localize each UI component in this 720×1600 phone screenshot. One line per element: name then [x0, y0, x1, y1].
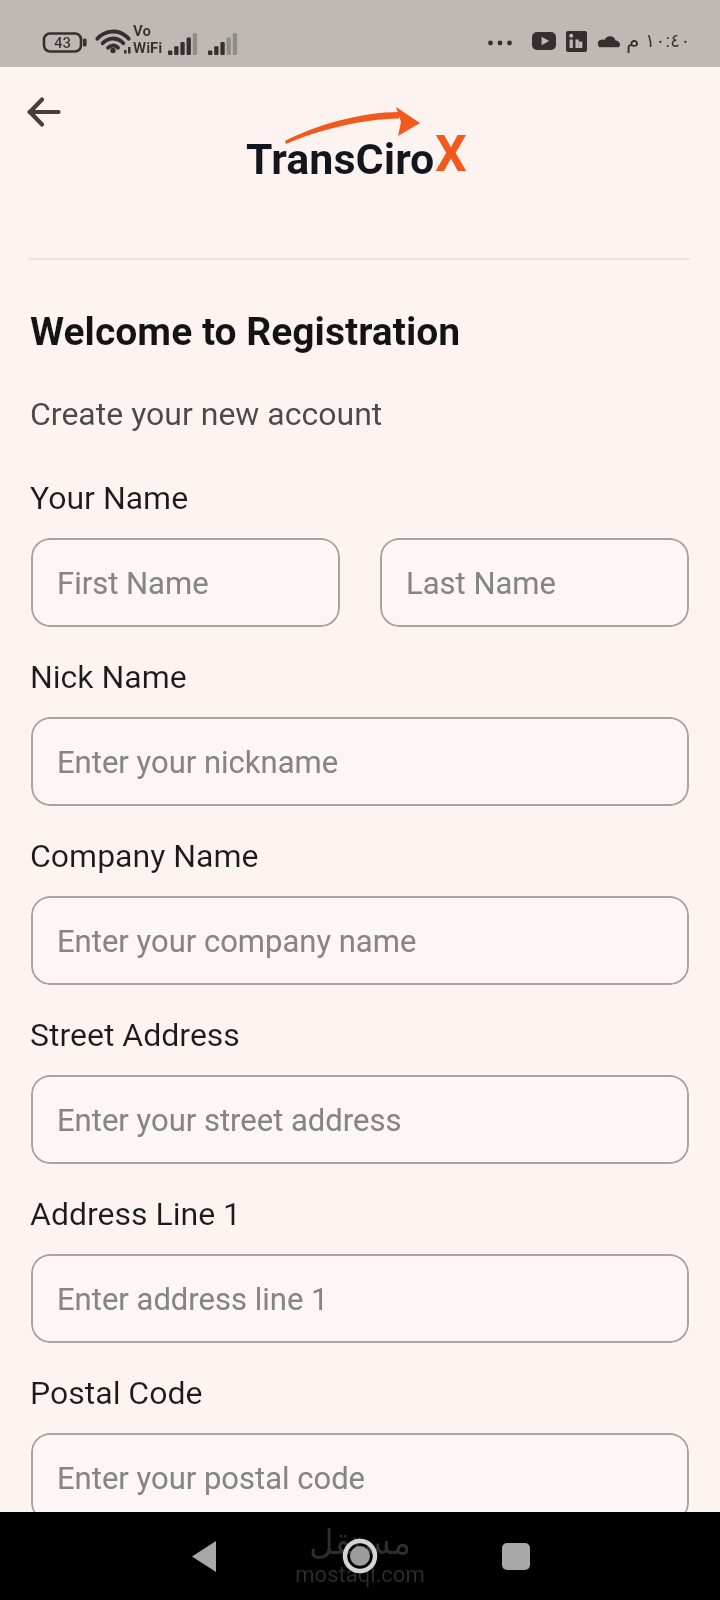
button[interactable]: Recent apps: [489, 1529, 543, 1583]
button[interactable]: Back: [17, 85, 71, 139]
staticText: ١٠:٤٠: [645, 29, 691, 51]
staticText: Enter your street address: [57, 1102, 402, 1138]
button[interactable]: First Name: [31, 538, 340, 627]
staticText: Your Name: [30, 479, 189, 517]
staticText: م: [626, 28, 640, 54]
staticText: مستقل: [309, 1522, 411, 1562]
button[interactable]: Enter your street address: [31, 1075, 689, 1164]
staticText: Enter your company name: [57, 923, 417, 959]
staticText: Postal Code: [30, 1374, 203, 1412]
staticText: Company Name: [30, 837, 259, 875]
staticText: Street Address: [30, 1016, 240, 1054]
staticText: Enter your postal code: [57, 1460, 366, 1496]
staticText: Vo: [133, 22, 151, 40]
staticText: Welcome to Registration: [30, 309, 461, 355]
staticText: First Name: [57, 565, 209, 601]
staticText: 43: [54, 34, 72, 52]
button[interactable]: Home: [333, 1529, 387, 1583]
staticText: Address Line 1: [30, 1195, 242, 1233]
staticText: X: [435, 125, 467, 184]
button[interactable]: Enter your company name: [31, 896, 689, 985]
staticText: Enter your nickname: [57, 744, 339, 780]
staticText: Last Name: [406, 565, 556, 601]
button[interactable]: System back: [177, 1529, 231, 1583]
staticText: Enter address line 1: [57, 1281, 329, 1317]
button[interactable]: Enter your postal code: [31, 1433, 689, 1522]
staticText: WiFi: [133, 39, 163, 57]
button[interactable]: Last Name: [380, 538, 689, 627]
button[interactable]: Enter your nickname: [31, 717, 689, 806]
button[interactable]: Enter address line 1: [31, 1254, 689, 1343]
staticText: Nick Name: [30, 658, 187, 696]
staticText: TransCiro: [246, 134, 435, 184]
staticText: mostaql.com: [295, 1562, 425, 1588]
staticText: Create your new account: [30, 395, 383, 433]
